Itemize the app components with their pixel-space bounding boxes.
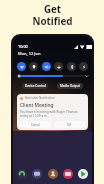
button[interactable]: Phone xyxy=(17,169,27,179)
staticText: Mon, 12 Jun xyxy=(18,51,41,56)
button[interactable]: Contacts xyxy=(48,169,58,179)
staticText: Device Control xyxy=(25,84,46,88)
staticText: Reminder Notification xyxy=(25,96,55,100)
staticText: OK xyxy=(67,123,72,127)
button[interactable]: Media Output xyxy=(57,83,83,89)
button[interactable]: Wi-Fi xyxy=(17,62,26,71)
staticText: Get Notified xyxy=(32,3,73,28)
staticText: Client Meeting xyxy=(20,102,54,109)
staticText: Cancel xyxy=(31,123,40,127)
button[interactable]: Bluetooth xyxy=(67,62,76,71)
button[interactable]: Location xyxy=(29,62,38,71)
button[interactable]: Cancel xyxy=(20,121,51,128)
button[interactable]: Brightness xyxy=(16,73,89,79)
button[interactable]: Play Store xyxy=(78,169,88,179)
staticText: You have a meeting with Roger Thomas tod… xyxy=(20,110,85,118)
button[interactable]: Sound xyxy=(42,62,51,71)
button[interactable]: Reminder Notification xyxy=(17,94,88,130)
button[interactable]: Device Control xyxy=(22,83,48,89)
staticText: Media Output xyxy=(60,84,80,88)
button[interactable]: Airplane mode xyxy=(54,62,63,71)
button[interactable]: Flashlight xyxy=(79,62,88,71)
button[interactable]: Camera xyxy=(63,169,73,179)
staticText: 10:00 xyxy=(18,44,28,49)
button[interactable]: OK xyxy=(54,121,85,128)
button[interactable]: Messages xyxy=(32,169,42,179)
